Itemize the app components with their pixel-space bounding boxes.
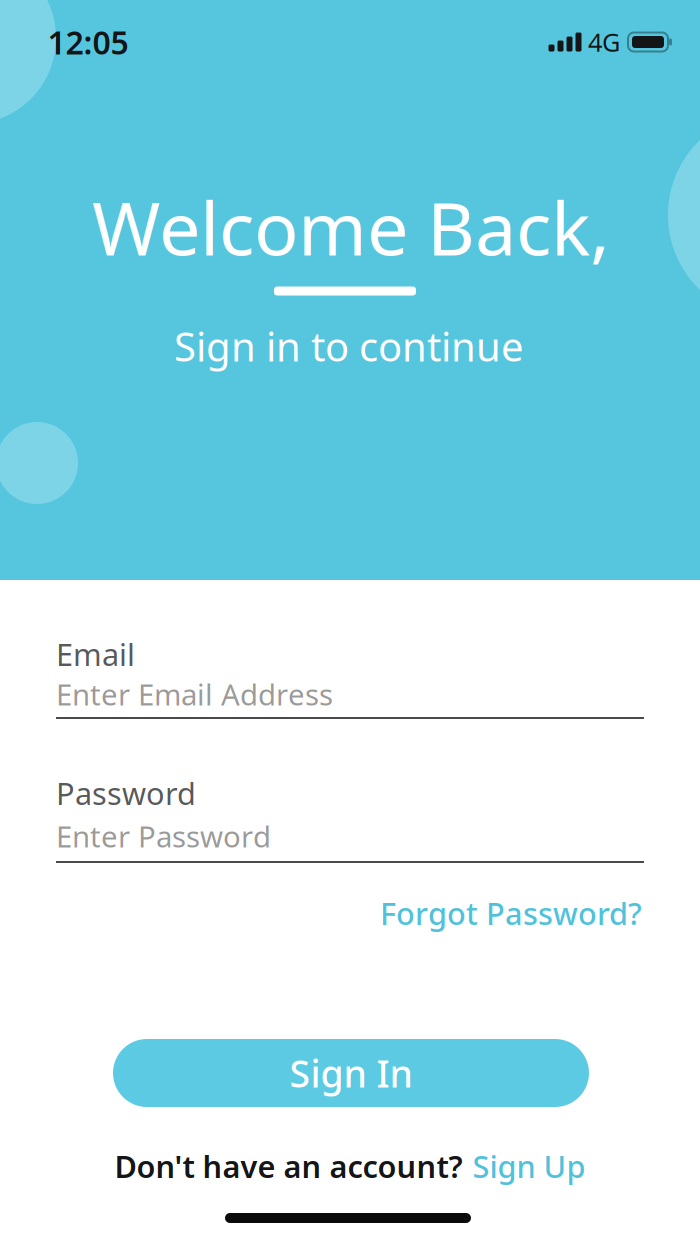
staticText: Email [56,634,135,674]
staticText: Sign in to continue [174,319,524,372]
staticText: Don't have an account? [114,1146,462,1186]
staticText: Password [56,773,196,813]
staticText: 4G [588,25,620,59]
staticText: Enter Password [56,816,271,855]
button[interactable]: Forgot Password? [380,893,642,933]
staticText: Enter Email Address [56,674,333,713]
staticText: 12:05 [47,21,128,63]
button[interactable]: Sign In [113,1039,589,1107]
staticText: Welcome Back, [92,178,610,276]
staticText: Sign In [289,1048,412,1098]
button[interactable]: Sign Up [472,1146,585,1186]
staticText: Forgot Password? [380,893,642,933]
button[interactable]: Email, text field [56,679,644,719]
staticText: Sign Up [472,1146,585,1186]
button[interactable]: Password, text field [56,821,644,863]
